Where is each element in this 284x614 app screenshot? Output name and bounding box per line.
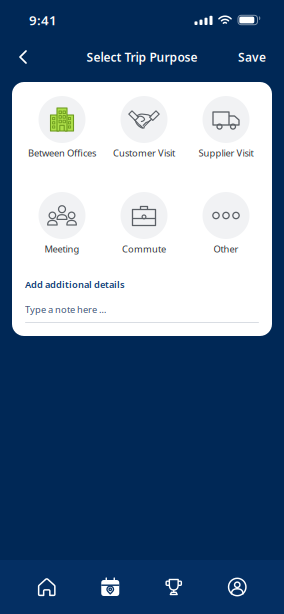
button[interactable]: Profile [205, 560, 269, 614]
button[interactable]: Meeting [21, 192, 103, 254]
staticText: Type a note here … [25, 303, 106, 316]
button[interactable]: Back [6, 40, 40, 74]
button[interactable]: Supplier Visit [185, 96, 267, 158]
button[interactable]: Save [232, 40, 272, 74]
staticText: Commute [122, 243, 166, 255]
staticText: Other [213, 243, 238, 255]
staticText: Save [238, 49, 266, 65]
button[interactable]: Customer Visit [103, 96, 185, 158]
button[interactable]: Rewards [142, 560, 205, 614]
staticText: Customer Visit [113, 147, 175, 159]
button[interactable]: Trips [78, 560, 142, 614]
staticText: Supplier Visit [198, 147, 253, 159]
staticText: Add additional details [25, 278, 125, 291]
button[interactable]: Commute [103, 192, 185, 254]
button[interactable]: Other [185, 192, 267, 254]
staticText: Between Offices [28, 147, 96, 159]
button[interactable]: Home [15, 560, 78, 614]
staticText: Meeting [44, 243, 79, 255]
staticText: Select Trip Purpose [86, 49, 197, 65]
button[interactable]: Between Offices [21, 96, 103, 158]
staticText: 9:41 [29, 11, 57, 29]
